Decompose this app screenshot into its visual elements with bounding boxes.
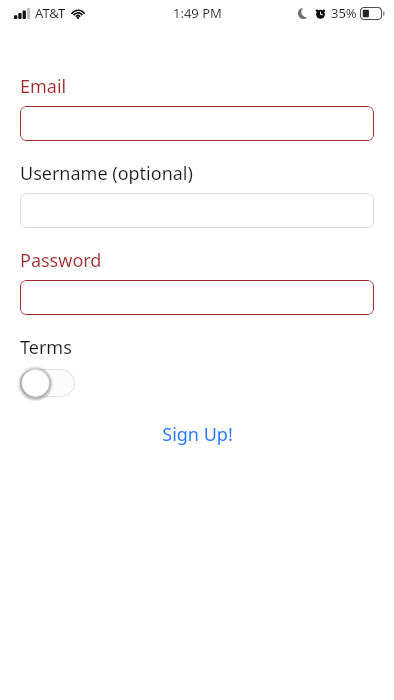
staticText: 1:49 PM — [173, 4, 222, 22]
button[interactable] — [20, 106, 374, 141]
button[interactable]: Terms toggle, off — [20, 368, 75, 398]
staticText: Sign Up! — [162, 422, 233, 447]
staticText: Terms — [20, 335, 72, 360]
button[interactable] — [20, 280, 374, 315]
staticText: Username (optional) — [20, 161, 193, 186]
staticText: Password — [20, 248, 102, 273]
staticText: AT&T — [35, 4, 66, 22]
button[interactable] — [20, 193, 374, 228]
staticText: 35% — [331, 4, 357, 22]
staticText: Email — [20, 74, 67, 99]
button[interactable]: Sign Up! — [0, 418, 394, 451]
